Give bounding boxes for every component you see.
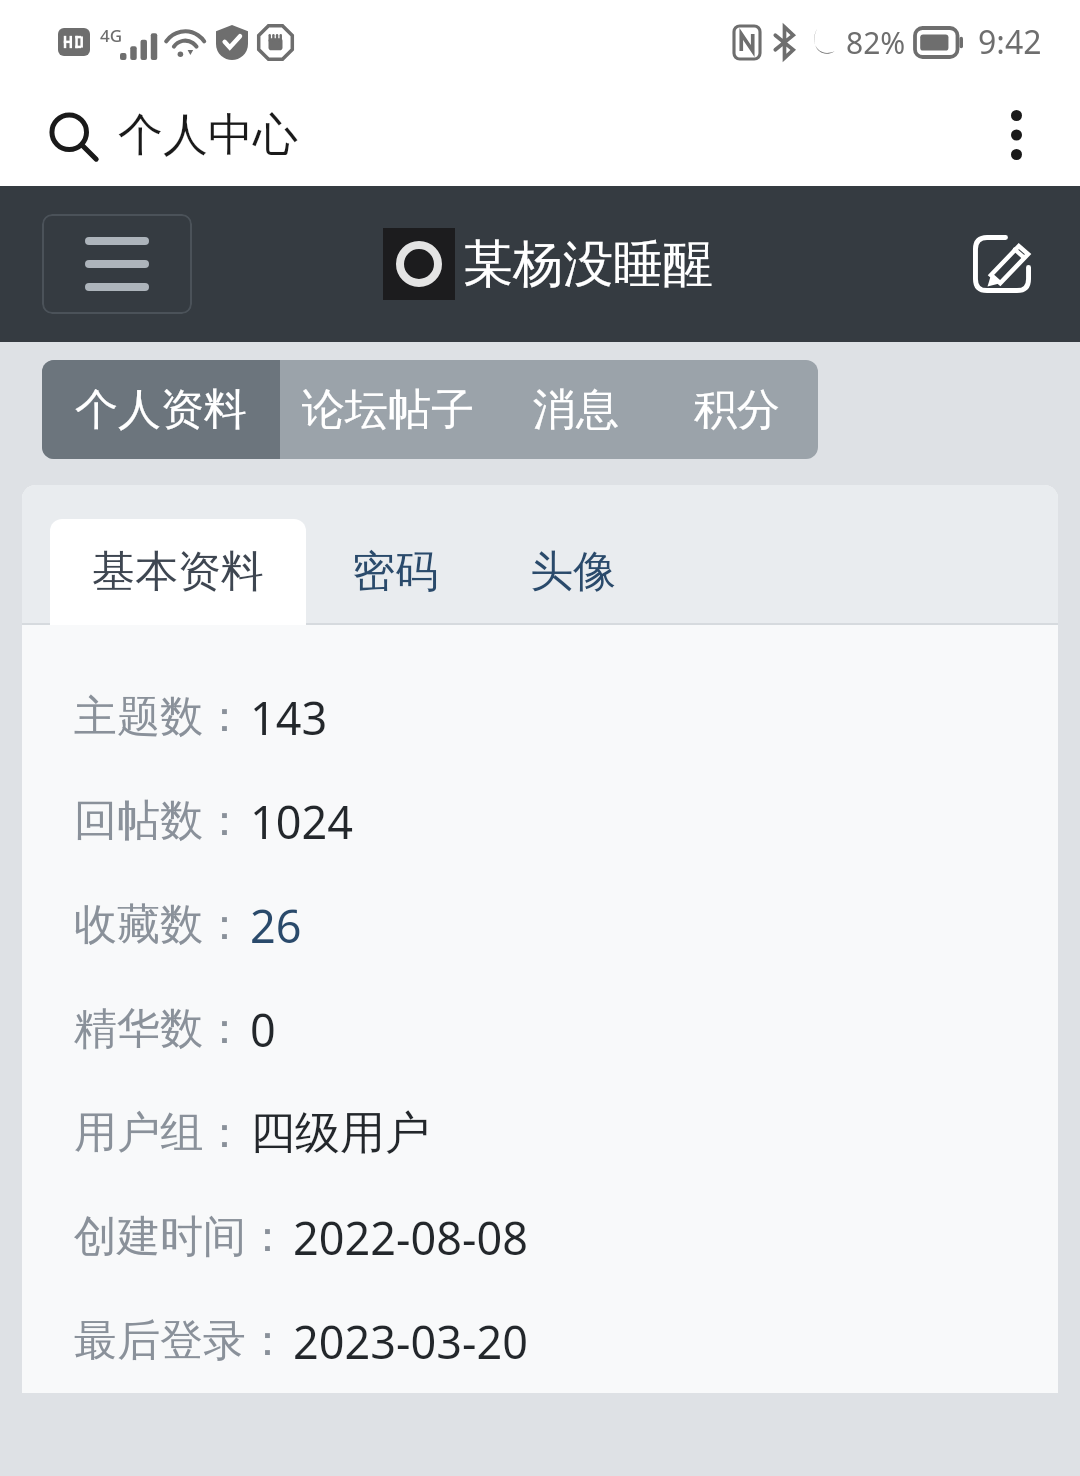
staticText: 头像 — [530, 545, 616, 599]
staticText: 个人中心 — [118, 107, 298, 164]
staticText: 四级用户 — [250, 1105, 430, 1162]
staticText: 某杨没睡醒 — [463, 233, 713, 296]
staticText: 回帖数： — [74, 794, 246, 848]
button[interactable]: 最后登录： — [74, 1289, 1058, 1393]
button[interactable]: 主题数： — [74, 665, 1058, 769]
staticText: 密码 — [352, 545, 438, 599]
button[interactable]: 用户组： — [74, 1081, 1058, 1185]
button[interactable]: 收藏数： — [74, 873, 1058, 977]
button[interactable]: 创建时间： — [74, 1185, 1058, 1289]
staticText: 基本资料 — [92, 545, 264, 599]
staticText: 消息 — [533, 383, 619, 437]
staticText: 论坛帖子 — [302, 383, 474, 437]
staticText: 82% — [846, 22, 906, 63]
staticText: 2023-03-20 — [293, 1311, 528, 1372]
staticText: 9:42 — [978, 20, 1042, 64]
button[interactable]: 精华数： — [74, 977, 1058, 1081]
button[interactable]: Edit profile — [964, 226, 1040, 302]
button[interactable]: 密码 — [306, 519, 484, 625]
button[interactable]: 积分 — [656, 360, 818, 459]
other: Search — [46, 109, 100, 163]
staticText: 创建时间： — [74, 1210, 289, 1264]
staticText: 收藏数： — [74, 898, 246, 952]
staticText: 1024 — [250, 791, 353, 852]
button[interactable]: 头像 — [484, 519, 662, 625]
button[interactable]: 某杨没睡醒 — [383, 228, 713, 300]
button[interactable]: 基本资料 — [50, 519, 306, 625]
button[interactable]: 论坛帖子 — [280, 360, 496, 459]
staticText: 主题数： — [74, 690, 246, 744]
staticText: 积分 — [694, 383, 780, 437]
staticText: 26 — [250, 895, 302, 956]
button[interactable]: 个人资料 — [42, 360, 280, 459]
staticText: 0 — [250, 999, 276, 1060]
button[interactable]: More options — [980, 99, 1052, 171]
staticText: 精华数： — [74, 1002, 246, 1056]
staticText: 个人资料 — [75, 383, 247, 437]
staticText: 4G — [100, 24, 123, 47]
staticText: 最后登录： — [74, 1314, 289, 1368]
staticText: 用户组： — [74, 1106, 246, 1160]
button[interactable]: 消息 — [496, 360, 656, 459]
staticText: 2022-08-08 — [293, 1207, 528, 1268]
button[interactable]: Search — [46, 107, 298, 164]
staticText: 143 — [250, 687, 328, 748]
button[interactable]: Menu — [42, 214, 192, 314]
button[interactable]: 回帖数： — [74, 769, 1058, 873]
